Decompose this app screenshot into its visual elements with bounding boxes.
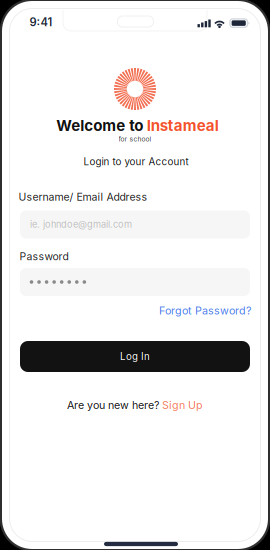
button[interactable] [20,268,250,296]
staticText: 9:41 [29,15,52,29]
button[interactable]: Sign Up [162,398,203,411]
staticText: Forgot Password? [159,304,251,317]
staticText: for school [118,135,151,143]
button[interactable]: Log In [20,341,250,372]
staticText: Log In [120,351,150,362]
staticText: Username/ Email Address [18,190,147,203]
button[interactable]: ie. johndoe@gmail.com [20,210,250,238]
staticText: Password [19,250,68,263]
staticText: Login to your Account [83,156,188,168]
staticText: ie. johndoe@gmail.com [30,219,132,230]
staticText: Welcome to [56,116,143,135]
staticText: Sign Up [162,398,203,411]
staticText: Instameal [147,116,219,135]
button[interactable]: Forgot Password? [159,304,251,317]
staticText: Are you new here? [67,398,159,411]
